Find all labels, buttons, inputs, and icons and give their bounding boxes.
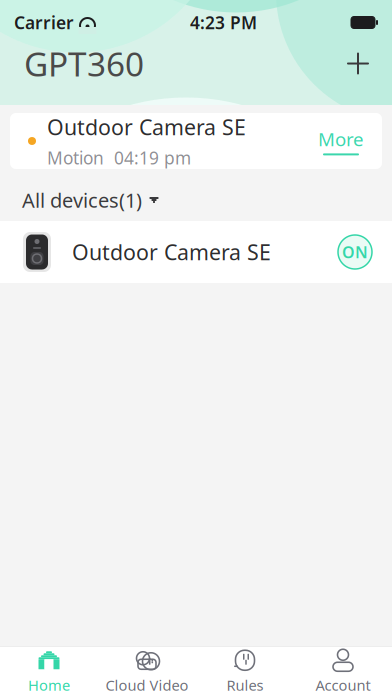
- staticText: 4:23 PM: [190, 11, 257, 34]
- button[interactable]: Account: [294, 647, 392, 696]
- staticText: GPT360: [24, 41, 144, 86]
- button[interactable]: Outdoor Camera SE: [10, 113, 382, 169]
- staticText: Outdoor Camera SE: [47, 113, 246, 141]
- button[interactable]: Rules: [196, 647, 294, 696]
- button[interactable]: Outdoor Camera SE: [0, 221, 392, 283]
- staticText: Motion 04:19 pm: [47, 146, 191, 169]
- staticText: More: [318, 127, 364, 151]
- button[interactable]: Add device: [338, 43, 378, 83]
- staticText: Account: [315, 675, 370, 695]
- staticText: Rules: [226, 675, 263, 695]
- staticText: All devices(1): [22, 187, 142, 213]
- button[interactable]: Home: [0, 647, 98, 696]
- staticText: Outdoor Camera SE: [72, 238, 271, 266]
- button[interactable]: All devices(1): [22, 179, 159, 221]
- staticText: Home: [28, 675, 70, 695]
- staticText: Cloud Video: [105, 675, 188, 695]
- staticText: Carrier: [14, 11, 74, 34]
- staticText: ON: [342, 241, 368, 263]
- button[interactable]: Cloud Video: [98, 647, 196, 696]
